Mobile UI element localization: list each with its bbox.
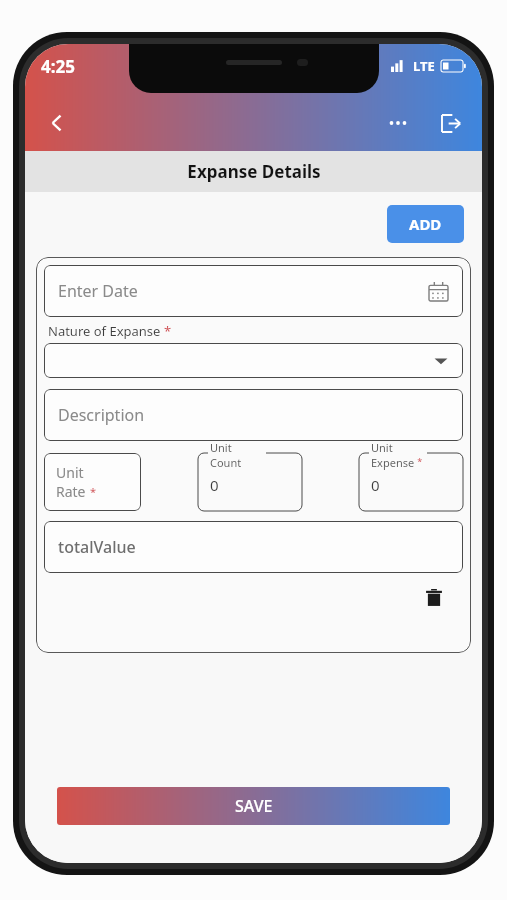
staticText: Count (210, 455, 242, 470)
staticText: SAVE (235, 795, 273, 817)
staticText: 4:25 (41, 55, 75, 78)
staticText: Nature of Expanse (48, 322, 164, 340)
button[interactable]: Delete (419, 583, 449, 613)
button[interactable]: SAVE (57, 787, 450, 825)
staticText: Unit (210, 440, 232, 455)
staticText: Expanse Details (187, 160, 321, 183)
staticText: 0 (371, 475, 380, 495)
staticText: Description (58, 404, 145, 426)
staticText: Unit (56, 463, 84, 482)
staticText: totalValue (58, 536, 136, 558)
button[interactable]: Open dropdown (44, 343, 463, 378)
button[interactable]: More options (378, 103, 418, 143)
staticText: * (164, 322, 172, 340)
other: Open dropdown (433, 353, 449, 369)
staticText: LTE (413, 57, 435, 75)
staticText: Enter Date (58, 280, 138, 302)
button[interactable]: ADD (387, 205, 464, 243)
staticText: Rate (56, 482, 90, 501)
button[interactable]: Logout (430, 103, 470, 143)
staticText: 0 (210, 475, 219, 495)
staticText: ADD (409, 214, 442, 234)
staticText: * (415, 455, 423, 467)
staticText: Unit (371, 440, 393, 455)
other: Pick date (427, 280, 449, 302)
button[interactable]: Back (37, 103, 77, 143)
staticText: Expense (371, 455, 415, 470)
staticText: * (90, 484, 97, 499)
